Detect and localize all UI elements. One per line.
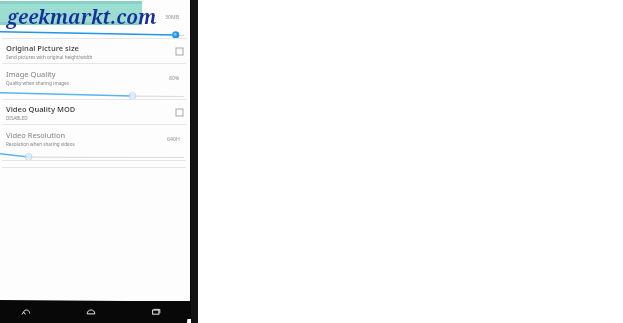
staticText: 30MB xyxy=(165,13,180,20)
button[interactable]: Back xyxy=(18,304,34,320)
staticText: Original Picture size xyxy=(6,43,79,53)
button[interactable]: Toggle Original Picture size xyxy=(174,46,184,56)
button[interactable]: Slider xyxy=(0,29,190,38)
staticText: Video Quality MOD xyxy=(6,104,76,114)
staticText: Image Quality xyxy=(6,69,56,79)
staticText: 80% xyxy=(169,74,180,81)
staticText: Send pictures with original height/width xyxy=(6,54,93,60)
staticText: Upload Size Limit xyxy=(6,8,69,18)
staticText: Resolution when sharing videos xyxy=(6,141,75,147)
button[interactable]: Upload Size Limit xyxy=(0,3,190,29)
staticText: Maximum size for uploads xyxy=(6,19,63,25)
button[interactable]: Original Picture size xyxy=(0,39,190,63)
staticText: DISABLED xyxy=(6,115,28,121)
staticText: Quality when sharing images xyxy=(6,80,69,86)
button[interactable]: Toggle Video Quality MOD xyxy=(174,107,184,117)
button[interactable]: Video Resolution xyxy=(0,125,190,151)
button[interactable]: Slider xyxy=(0,90,190,99)
staticText: Video Resolution xyxy=(6,130,66,140)
button[interactable]: Video Quality MOD xyxy=(0,100,190,124)
staticText: 640H xyxy=(167,135,180,142)
button[interactable]: Recents xyxy=(148,304,164,320)
staticText: geekmarkt.com xyxy=(7,4,157,30)
button[interactable]: Slider xyxy=(0,151,190,160)
button[interactable]: Image Quality xyxy=(0,64,190,90)
button[interactable]: Home xyxy=(83,304,99,320)
